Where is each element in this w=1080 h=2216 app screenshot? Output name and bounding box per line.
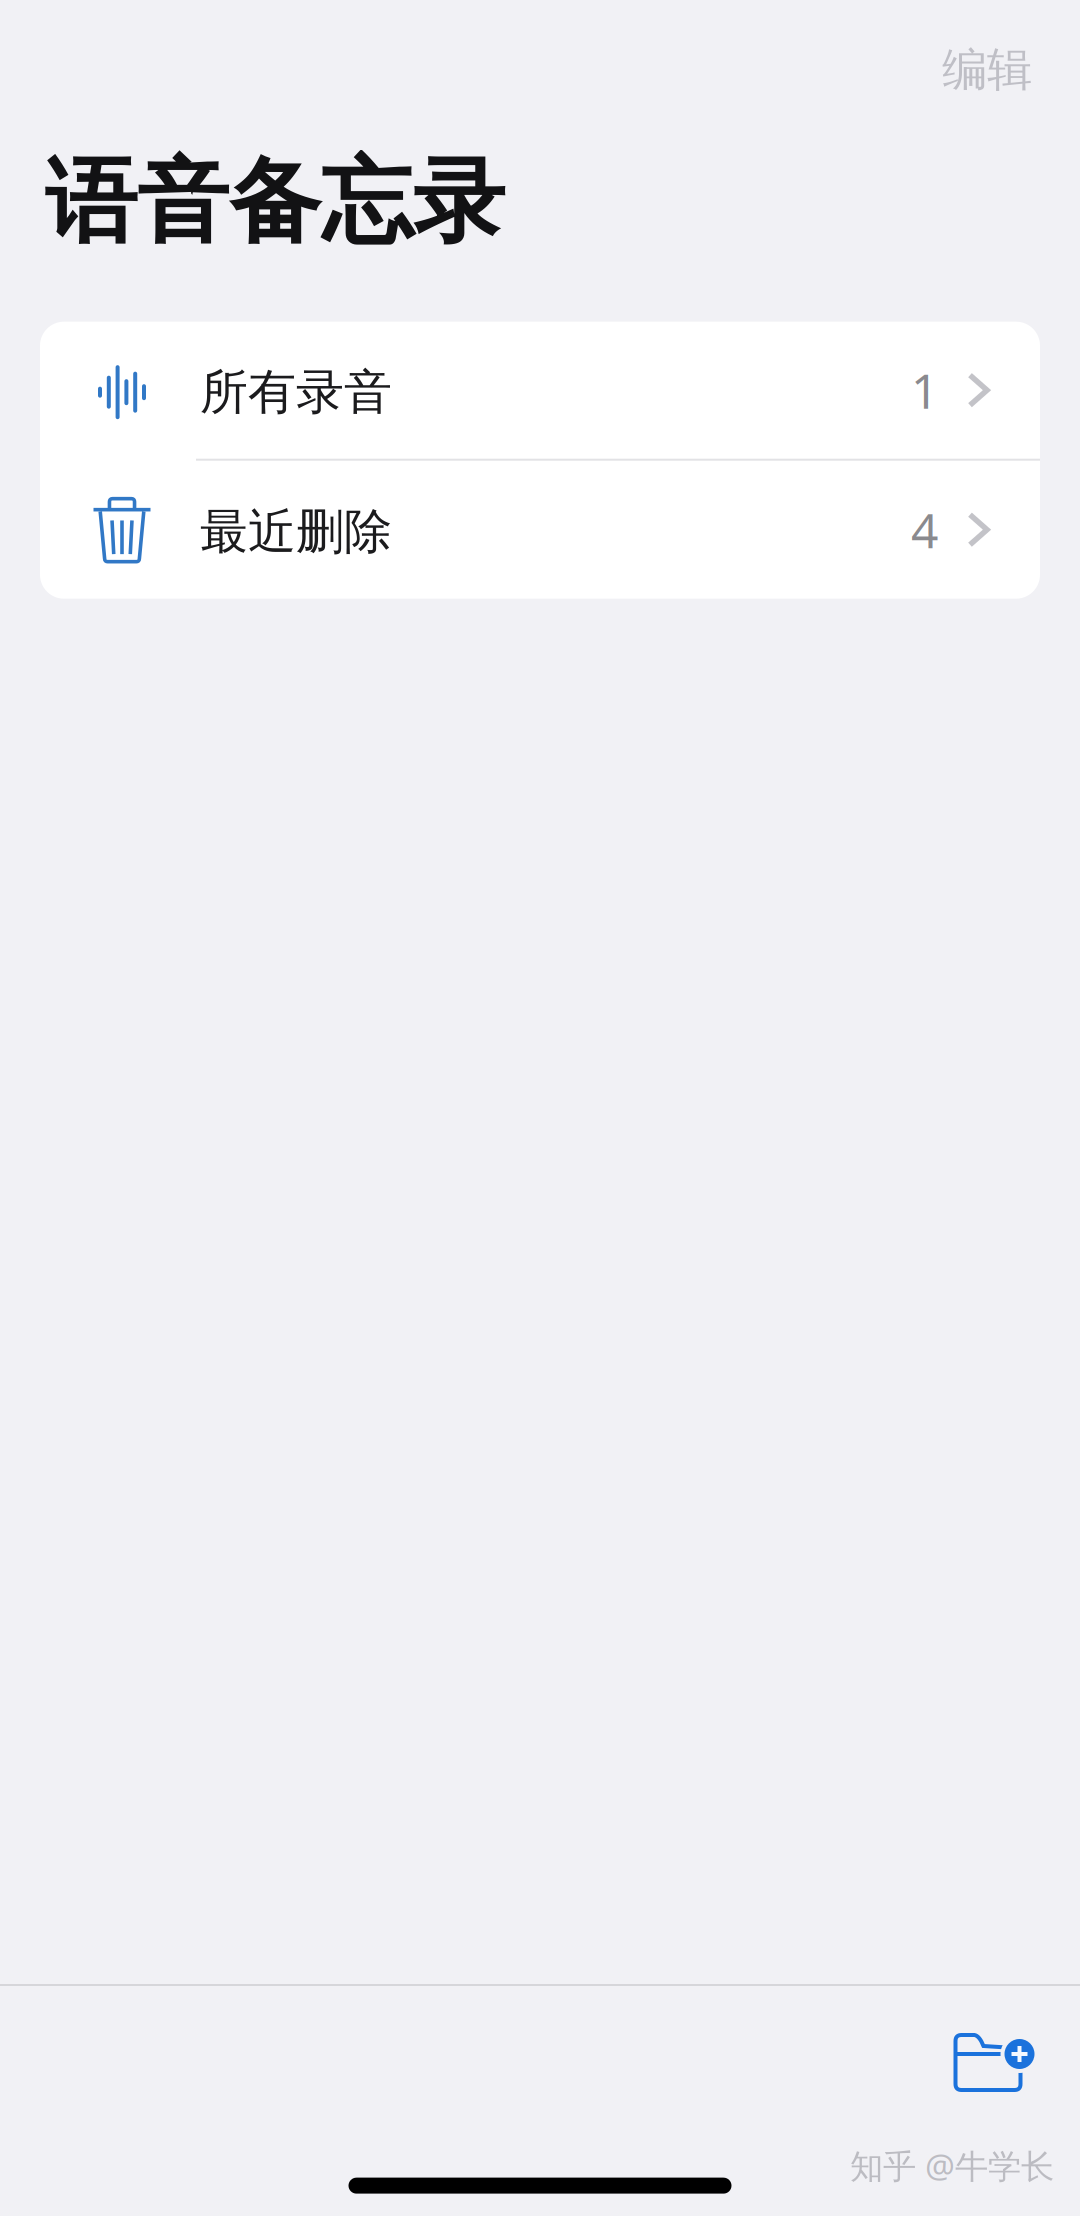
staticText: 编辑	[942, 42, 1032, 98]
staticText: 4	[911, 498, 938, 561]
staticText: 所有录音	[200, 363, 392, 422]
staticText: 语音备忘录	[45, 146, 505, 259]
staticText: 1	[911, 358, 938, 422]
staticText: 最近删除	[200, 502, 392, 561]
staticText: 知乎 @牛学长	[850, 2143, 1054, 2188]
button[interactable]: 编辑	[918, 24, 1056, 116]
button[interactable]: 所有录音	[40, 322, 1040, 459]
button[interactable]: 最近删除	[40, 461, 1040, 599]
button[interactable]: New Folder	[944, 2024, 1050, 2102]
